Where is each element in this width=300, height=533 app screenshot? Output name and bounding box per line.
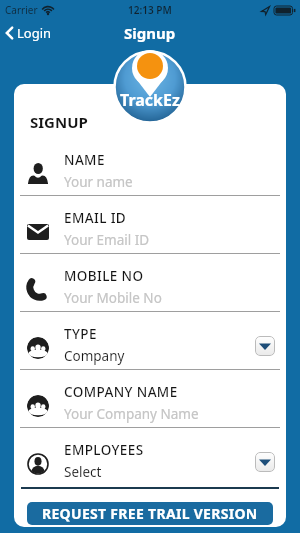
- staticText: SIGNUP: [30, 112, 88, 132]
- button[interactable]: [255, 336, 275, 356]
- button[interactable]: MOBILE NO: [14, 254, 286, 312]
- staticText: Your name: [64, 173, 133, 191]
- button[interactable]: TYPE: [14, 312, 286, 370]
- button[interactable]: EMPLOYEES: [14, 428, 286, 487]
- button[interactable]: Login: [0, 22, 58, 44]
- staticText: EMPLOYEES: [64, 441, 144, 459]
- staticText: Select: [64, 463, 102, 481]
- staticText: Login: [17, 24, 52, 42]
- staticText: REQUEST FREE TRAIL VERSION: [42, 504, 258, 523]
- staticText: Your Mobile No: [64, 289, 162, 307]
- staticText: Your Company Name: [64, 405, 199, 423]
- staticText: TYPE: [64, 325, 97, 343]
- button[interactable]: NAME: [14, 138, 286, 196]
- staticText: EMAIL ID: [64, 209, 127, 227]
- button[interactable]: REQUEST FREE TRAIL VERSION: [27, 502, 273, 525]
- staticText: COMPANY NAME: [64, 383, 178, 401]
- button[interactable]: EMAIL ID: [14, 196, 286, 254]
- staticText: NAME: [64, 151, 105, 169]
- staticText: TrackEz: [120, 89, 180, 111]
- button[interactable]: [255, 452, 275, 472]
- button[interactable]: COMPANY NAME: [14, 370, 286, 428]
- staticText: Company: [64, 347, 125, 365]
- staticText: Your Email ID: [64, 231, 150, 249]
- staticText: Carrier: [5, 3, 38, 17]
- staticText: 12:13 PM: [128, 3, 172, 17]
- staticText: MOBILE NO: [64, 267, 144, 285]
- staticText: Signup: [124, 23, 176, 43]
